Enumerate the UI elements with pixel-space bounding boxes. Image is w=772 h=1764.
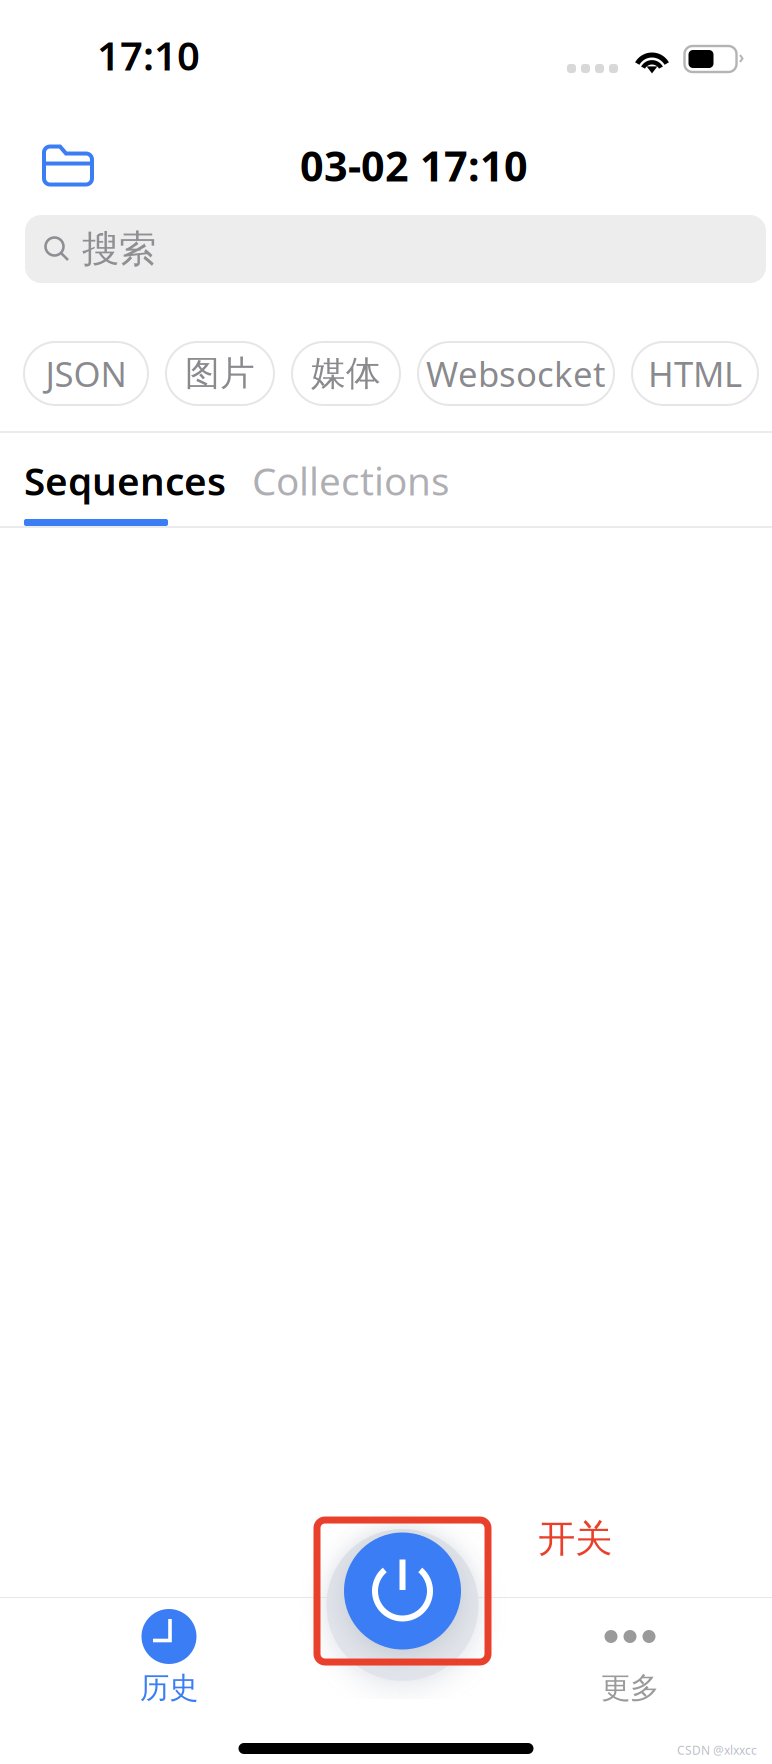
button[interactable]: 搜索	[25, 215, 766, 283]
staticText: JSON	[45, 350, 126, 396]
button[interactable]: Power	[317, 1520, 488, 1662]
button[interactable]: 历史	[94, 1609, 244, 1701]
staticText: 更多	[601, 1670, 659, 1706]
staticText: Sequences	[24, 455, 226, 506]
button[interactable]: JSON	[24, 342, 148, 405]
button[interactable]: 媒体	[292, 342, 400, 405]
staticText: 搜索	[82, 226, 156, 272]
staticText: Collections	[252, 455, 450, 506]
button[interactable]: Collections	[252, 442, 450, 519]
staticText: CSDN @xlxxcc	[677, 1742, 757, 1758]
button[interactable]: 更多	[555, 1609, 705, 1701]
button[interactable]: Websocket	[418, 342, 614, 405]
staticText: 媒体	[311, 352, 381, 395]
staticText: 03-02 17:10	[300, 138, 528, 193]
button[interactable]: HTML	[632, 342, 758, 405]
staticText: 开关	[538, 1516, 612, 1562]
staticText: 历史	[140, 1670, 198, 1706]
button[interactable]: Sequences	[24, 442, 226, 519]
staticText: Websocket	[426, 350, 606, 396]
staticText: 图片	[185, 352, 255, 395]
staticText: HTML	[648, 350, 742, 396]
button[interactable]: Folders	[36, 134, 100, 196]
staticText: 17:10	[97, 28, 200, 81]
button[interactable]: 图片	[166, 342, 274, 405]
